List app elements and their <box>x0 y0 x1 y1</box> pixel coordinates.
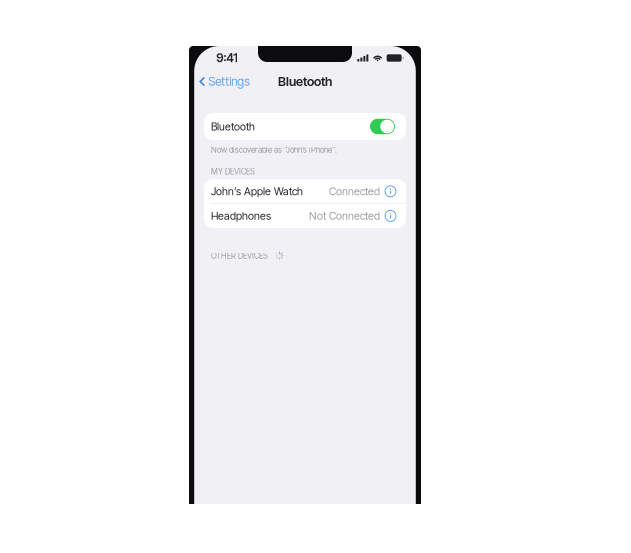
staticText: Headphones <box>211 209 271 222</box>
staticText: Bluetooth <box>278 74 332 89</box>
staticText: 9:41 <box>216 51 238 65</box>
staticText: Bluetooth <box>211 120 255 133</box>
button[interactable]: John’s Apple Watch <box>204 179 406 203</box>
staticText: Settings <box>208 74 250 89</box>
staticText: Connected <box>329 185 380 198</box>
staticText: MY DEVICES <box>211 167 255 176</box>
staticText: Not Connected <box>309 209 380 222</box>
staticText: OTHER DEVICES <box>211 251 268 261</box>
staticText: Now discoverable as “John’s iPhone”. <box>211 145 337 155</box>
staticText: John’s Apple Watch <box>211 185 303 198</box>
button[interactable]: Headphones <box>204 204 406 228</box>
button[interactable]: Settings <box>194 70 254 93</box>
